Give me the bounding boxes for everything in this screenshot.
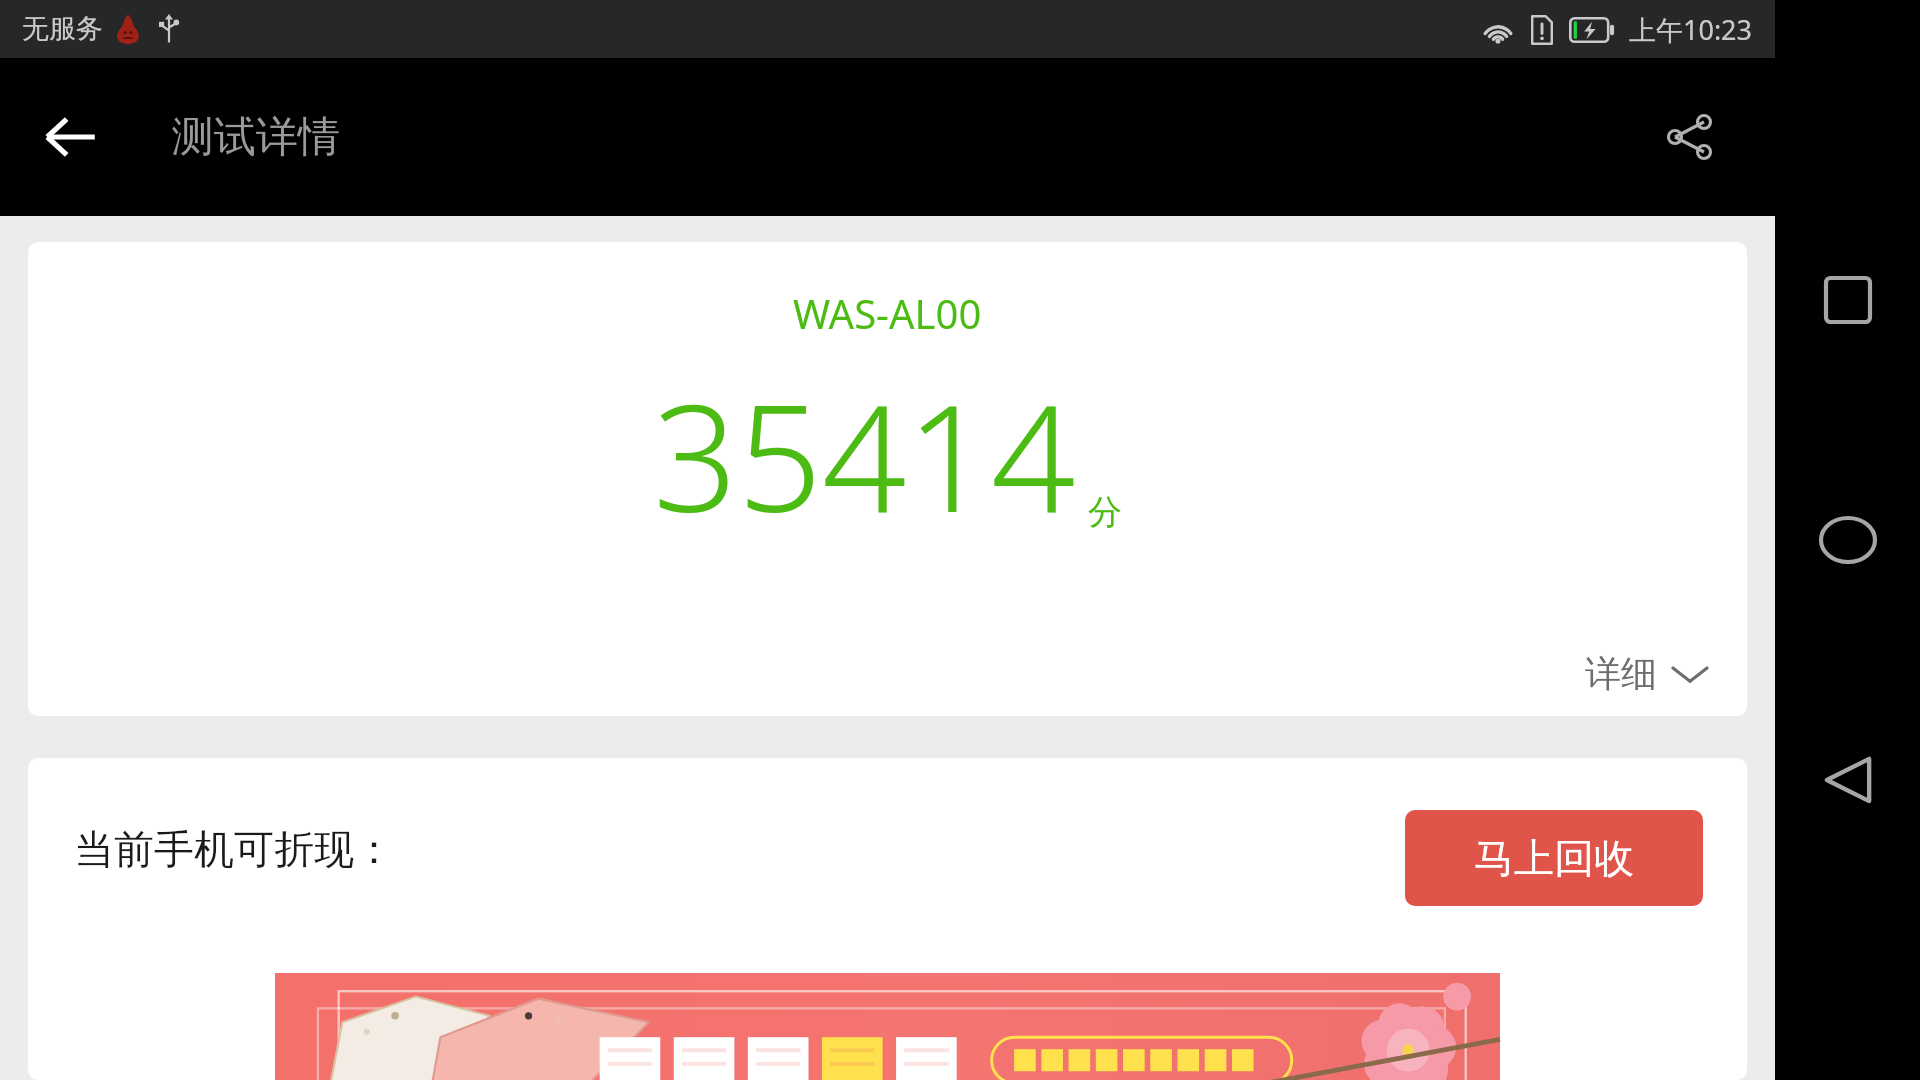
button[interactable]: Recent apps — [1788, 240, 1908, 360]
button[interactable]: Home — [1788, 480, 1908, 600]
staticText: 上午10:23 — [1629, 11, 1753, 48]
button[interactable]: WAS-AL00 — [28, 242, 1747, 716]
button[interactable]: 马上回收 — [1405, 810, 1703, 906]
button[interactable]: Back — [30, 96, 112, 178]
staticText: 无服务 — [22, 12, 103, 46]
staticText: 分 — [1088, 491, 1122, 534]
staticText: 马上回收 — [1474, 833, 1634, 883]
button[interactable]: 详细 — [1585, 651, 1709, 696]
button[interactable]: Share — [1651, 97, 1731, 177]
button[interactable]: Back — [1788, 720, 1908, 840]
button[interactable]: Promotion banner — [275, 973, 1500, 1080]
staticText: 测试详情 — [172, 111, 340, 164]
staticText: 详细 — [1585, 651, 1657, 696]
staticText: 当前手机可折现： — [74, 824, 394, 874]
staticText: 35414 — [653, 354, 1076, 556]
staticText: WAS-AL00 — [793, 286, 982, 340]
